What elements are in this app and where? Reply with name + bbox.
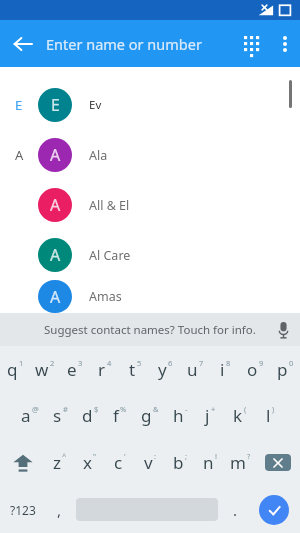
button[interactable]: j <box>195 392 225 439</box>
staticText: E <box>51 94 60 116</box>
staticText: Amas <box>89 288 122 305</box>
button[interactable]: c <box>105 439 135 486</box>
staticText: Ala <box>89 147 108 164</box>
button[interactable]: v <box>135 439 165 486</box>
staticText: o <box>247 358 258 381</box>
staticText: b <box>173 451 184 474</box>
staticText: d <box>82 404 93 427</box>
button[interactable]: A <box>0 280 300 313</box>
button[interactable]: b <box>165 439 195 486</box>
staticText: 6 <box>168 358 173 368</box>
button[interactable]: w <box>30 346 60 392</box>
button[interactable]: z <box>45 439 75 486</box>
staticText: j <box>205 404 210 427</box>
staticText: % <box>120 404 127 414</box>
button[interactable]: o <box>240 346 270 392</box>
staticText: Enter name or number <box>46 34 202 54</box>
button[interactable]: g <box>135 392 165 439</box>
button[interactable]: More options <box>270 20 300 67</box>
button[interactable]: . <box>222 486 248 533</box>
staticText: Suggest contact names? Touch for info. <box>44 322 256 338</box>
button[interactable]: q <box>0 346 30 392</box>
staticText: e <box>67 358 77 381</box>
staticText: A <box>50 286 61 308</box>
button[interactable]: n <box>195 439 225 486</box>
staticText: m <box>230 451 246 474</box>
button[interactable]: Shift <box>0 439 45 486</box>
button[interactable]: s <box>45 392 75 439</box>
button[interactable]: E <box>0 80 300 130</box>
staticText: ; <box>185 451 188 461</box>
staticText: Al Care <box>89 247 131 264</box>
button[interactable]: d <box>75 392 105 439</box>
button[interactable]: Suggest contact names? Touch for info. <box>0 313 300 346</box>
staticText: @ <box>32 404 39 414</box>
staticText: 1 <box>19 358 24 368</box>
staticText: a <box>21 404 31 427</box>
button[interactable]: Back <box>0 20 46 67</box>
staticText: w <box>35 358 49 381</box>
staticText: p <box>277 358 288 381</box>
staticText: A <box>50 194 61 216</box>
staticText: A <box>15 146 24 164</box>
button[interactable]: k <box>225 392 255 439</box>
staticText: : <box>154 451 157 461</box>
staticText: ) <box>272 404 275 414</box>
button[interactable]: r <box>90 346 120 392</box>
staticText: h <box>173 404 184 427</box>
staticText: u <box>187 358 198 381</box>
staticText: k <box>233 404 243 427</box>
staticText: A <box>50 144 61 166</box>
staticText: + <box>211 404 216 414</box>
staticText: " <box>93 451 97 461</box>
staticText: . <box>233 500 238 520</box>
staticText: ^ <box>62 451 67 461</box>
staticText: 8 <box>226 358 231 368</box>
button[interactable]: i <box>210 346 240 392</box>
staticText: A <box>50 244 61 266</box>
staticText: $ <box>94 404 99 414</box>
staticText: 3 <box>78 358 83 368</box>
button[interactable]: h <box>165 392 195 439</box>
button[interactable]: e <box>60 346 90 392</box>
button[interactable]: m <box>225 439 255 486</box>
button[interactable]: ?123 <box>0 486 46 533</box>
staticText: l <box>266 404 271 427</box>
button[interactable]: x <box>75 439 105 486</box>
button[interactable]: A <box>0 130 300 180</box>
button[interactable]: , <box>46 486 72 533</box>
button[interactable]: Done <box>248 486 300 533</box>
staticText: n <box>203 451 214 474</box>
button[interactable]: l <box>255 392 285 439</box>
button[interactable]: A <box>0 230 300 280</box>
staticText: E <box>15 96 23 114</box>
staticText: & <box>153 404 159 414</box>
button[interactable]: t <box>120 346 150 392</box>
button[interactable]: A <box>0 180 300 230</box>
staticText: c <box>114 451 123 474</box>
button[interactable]: f <box>105 392 135 439</box>
staticText: f <box>113 404 119 427</box>
staticText: ! <box>215 451 218 461</box>
button[interactable]: a <box>15 392 45 439</box>
staticText: y <box>158 358 167 381</box>
staticText: ? <box>247 451 251 461</box>
staticText: 2 <box>50 358 55 368</box>
staticText: 5 <box>137 358 142 368</box>
button[interactable]: Dialpad <box>232 20 270 67</box>
button[interactable]: Enter name or number <box>46 20 232 67</box>
staticText: g <box>141 404 152 427</box>
staticText: q <box>7 358 18 381</box>
button[interactable]: y <box>150 346 180 392</box>
button[interactable]: u <box>180 346 210 392</box>
staticText: Ev <box>89 97 102 113</box>
staticText: 4 <box>107 358 112 368</box>
button[interactable]: Voice input <box>266 313 300 346</box>
staticText: ( <box>244 404 247 414</box>
staticText: 9 <box>259 358 264 368</box>
button[interactable]: p <box>270 346 300 392</box>
button[interactable]: Backspace <box>255 439 300 486</box>
staticText: s <box>53 404 62 427</box>
staticText: 7 <box>199 358 204 368</box>
